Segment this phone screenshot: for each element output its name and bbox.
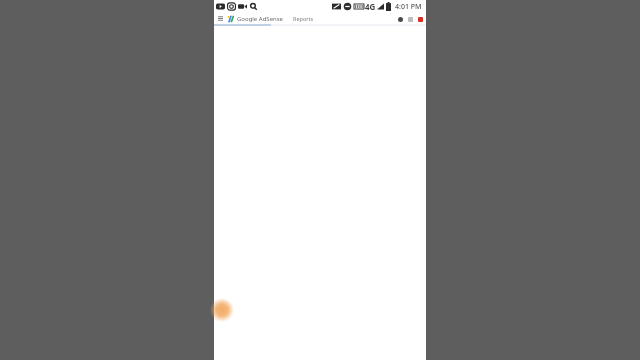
staticText: 4:01 PM (395, 2, 422, 12)
button[interactable]: Notifications (416, 15, 424, 23)
button[interactable]: Account (396, 15, 404, 23)
staticText: Google AdSense (237, 15, 283, 23)
button[interactable]: Help (406, 15, 414, 23)
button[interactable]: Navigation menu (216, 14, 225, 23)
staticText: 4G (365, 1, 376, 12)
button[interactable]: Google AdSense (227, 15, 283, 23)
staticText: Reports (293, 15, 314, 22)
button[interactable]: Reports (293, 15, 314, 22)
